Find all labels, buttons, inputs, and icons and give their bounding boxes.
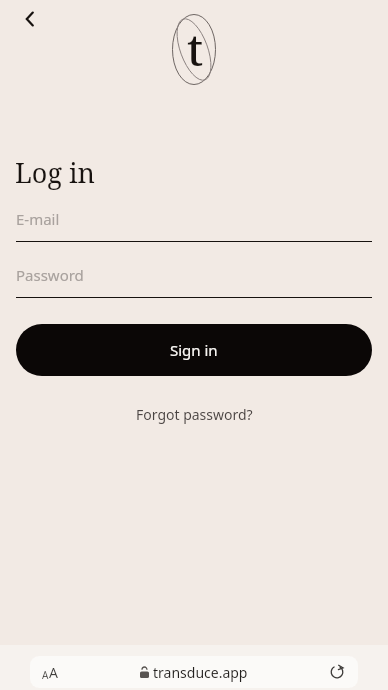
- button[interactable]: Password: [16, 262, 372, 298]
- staticText: t: [187, 19, 204, 79]
- staticText: Password: [16, 265, 84, 285]
- button[interactable]: Text size: [42, 663, 58, 682]
- button[interactable]: Forgot password?: [0, 400, 388, 428]
- button[interactable]: Back: [8, 2, 52, 36]
- button[interactable]: E-mail: [16, 206, 372, 242]
- button[interactable]: Sign in: [16, 324, 372, 376]
- staticText: A: [49, 663, 58, 682]
- button[interactable]: Reload: [326, 661, 348, 683]
- button[interactable]: Text size: [30, 656, 358, 688]
- staticText: Forgot password?: [136, 405, 253, 424]
- staticText: transduce.app: [153, 663, 248, 682]
- staticText: A: [42, 668, 49, 682]
- staticText: Sign in: [170, 340, 218, 360]
- staticText: Log in: [15, 154, 96, 191]
- staticText: E-mail: [16, 209, 60, 229]
